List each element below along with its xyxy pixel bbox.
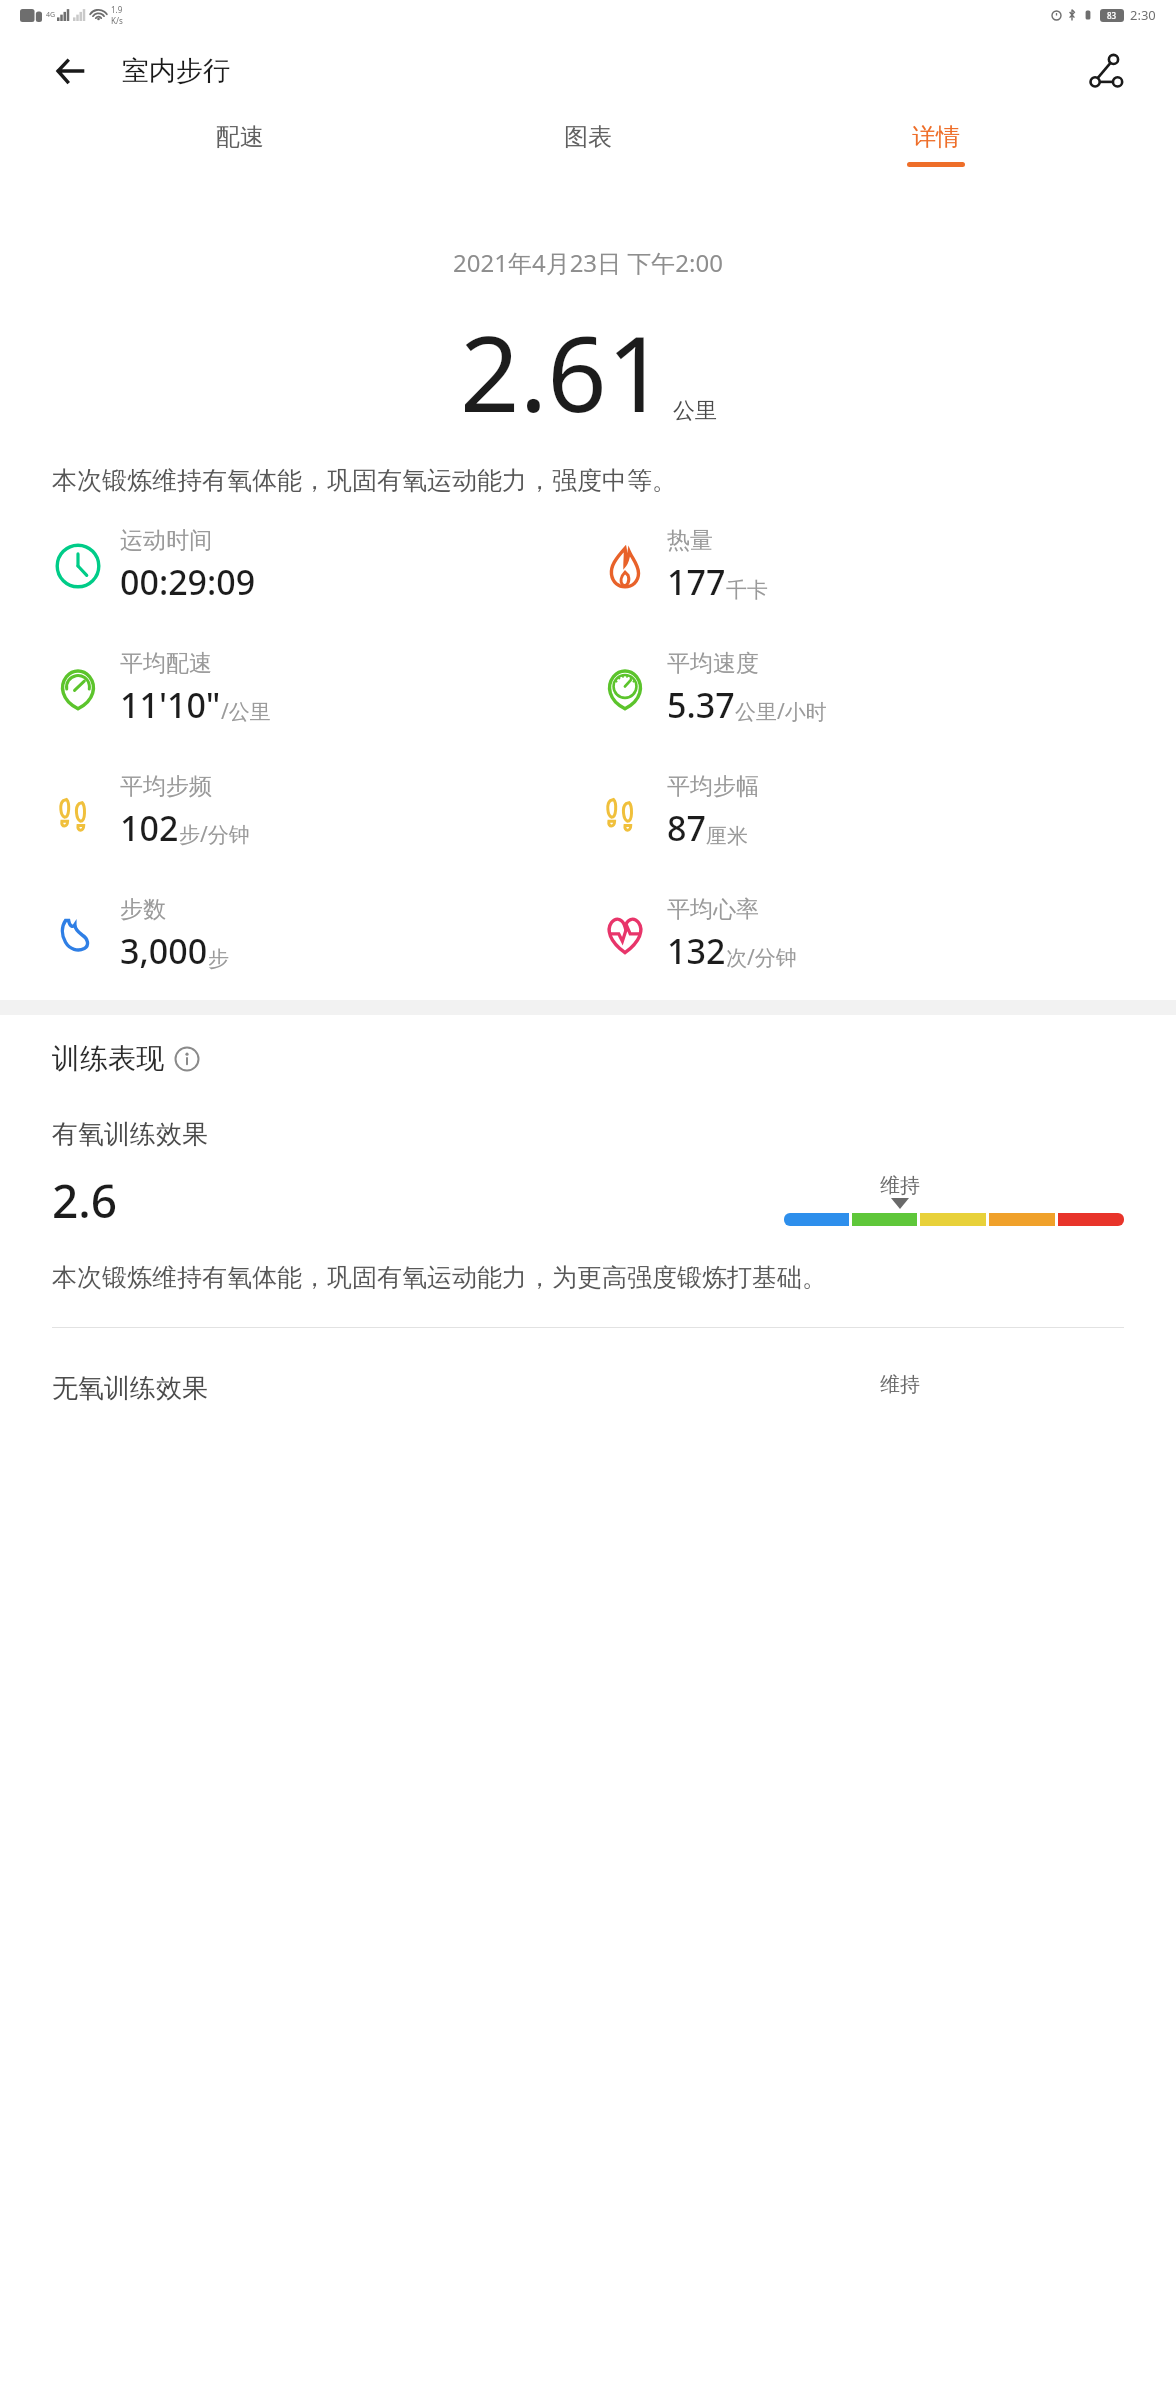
button[interactable]: 图表 <box>528 112 648 190</box>
button[interactable]: 平均配速 <box>52 649 599 728</box>
other: Info <box>174 1046 200 1072</box>
staticText: 维持 <box>880 1173 920 1198</box>
staticText: 热量 <box>667 526 713 555</box>
staticText: 厘米 <box>706 823 748 849</box>
button[interactable]: 热量 <box>599 526 1146 605</box>
staticText: K/s <box>111 15 123 26</box>
staticText: 83 <box>1107 10 1117 21</box>
staticText: 平均步幅 <box>667 772 759 801</box>
button[interactable]: 详情 <box>876 112 996 190</box>
staticText: 配速 <box>216 122 264 152</box>
staticText: 千卡 <box>726 577 768 603</box>
button[interactable]: 运动时间 <box>52 526 599 605</box>
staticText: 无氧训练效果 <box>52 1372 208 1405</box>
staticText: 公里/小时 <box>735 697 827 726</box>
staticText: 步/分钟 <box>179 820 250 849</box>
button[interactable]: Share <box>1078 43 1134 99</box>
staticText: 2.6 <box>52 1169 118 1232</box>
staticText: 平均步频 <box>120 772 212 801</box>
staticText: 132 <box>667 928 726 974</box>
staticText: 本次锻炼维持有氧体能，巩固有氧运动能力，强度中等。 <box>52 465 1124 496</box>
button[interactable]: 平均速度 <box>599 649 1146 728</box>
staticText: 次/分钟 <box>726 943 797 972</box>
staticText: 维持 <box>880 1372 920 1397</box>
staticText: 步 <box>208 946 229 972</box>
staticText: 87 <box>667 805 706 851</box>
staticText: 平均配速 <box>120 649 212 678</box>
staticText: 11'10" <box>120 682 221 728</box>
staticText: 4G <box>46 10 56 20</box>
button[interactable]: 步数 <box>52 895 599 974</box>
staticText: 室内步行 <box>122 54 230 88</box>
button[interactable]: Back <box>44 45 96 97</box>
staticText: 3,000 <box>120 928 208 974</box>
staticText: 00:29:09 <box>120 559 256 605</box>
staticText: 1.9 <box>111 4 123 15</box>
staticText: 步数 <box>120 895 166 924</box>
staticText: 2021年4月23日 下午2:00 <box>453 246 723 279</box>
staticText: 平均心率 <box>667 895 759 924</box>
staticText: 运动时间 <box>120 526 212 555</box>
staticText: 详情 <box>912 122 960 152</box>
button[interactable]: 平均心率 <box>599 895 1146 974</box>
button[interactable]: 平均步频 <box>52 772 599 851</box>
staticText: 公里 <box>673 397 717 425</box>
staticText: 图表 <box>564 122 612 152</box>
staticText: 5.37 <box>667 682 735 728</box>
staticText: /公里 <box>221 697 271 726</box>
staticText: 2:30 <box>1130 6 1156 24</box>
staticText: 本次锻炼维持有氧体能，巩固有氧运动能力，为更高强度锻炼打基础。 <box>52 1262 827 1293</box>
staticText: 训练表现 <box>52 1041 164 1076</box>
staticText: 102 <box>120 805 179 851</box>
staticText: 2.61 <box>460 301 667 443</box>
button[interactable]: 训练表现 <box>52 1041 200 1076</box>
staticText: 177 <box>667 559 726 605</box>
button[interactable]: 平均步幅 <box>599 772 1146 851</box>
staticText: 平均速度 <box>667 649 759 678</box>
button[interactable]: 配速 <box>180 112 300 190</box>
staticText: 有氧训练效果 <box>52 1118 208 1151</box>
